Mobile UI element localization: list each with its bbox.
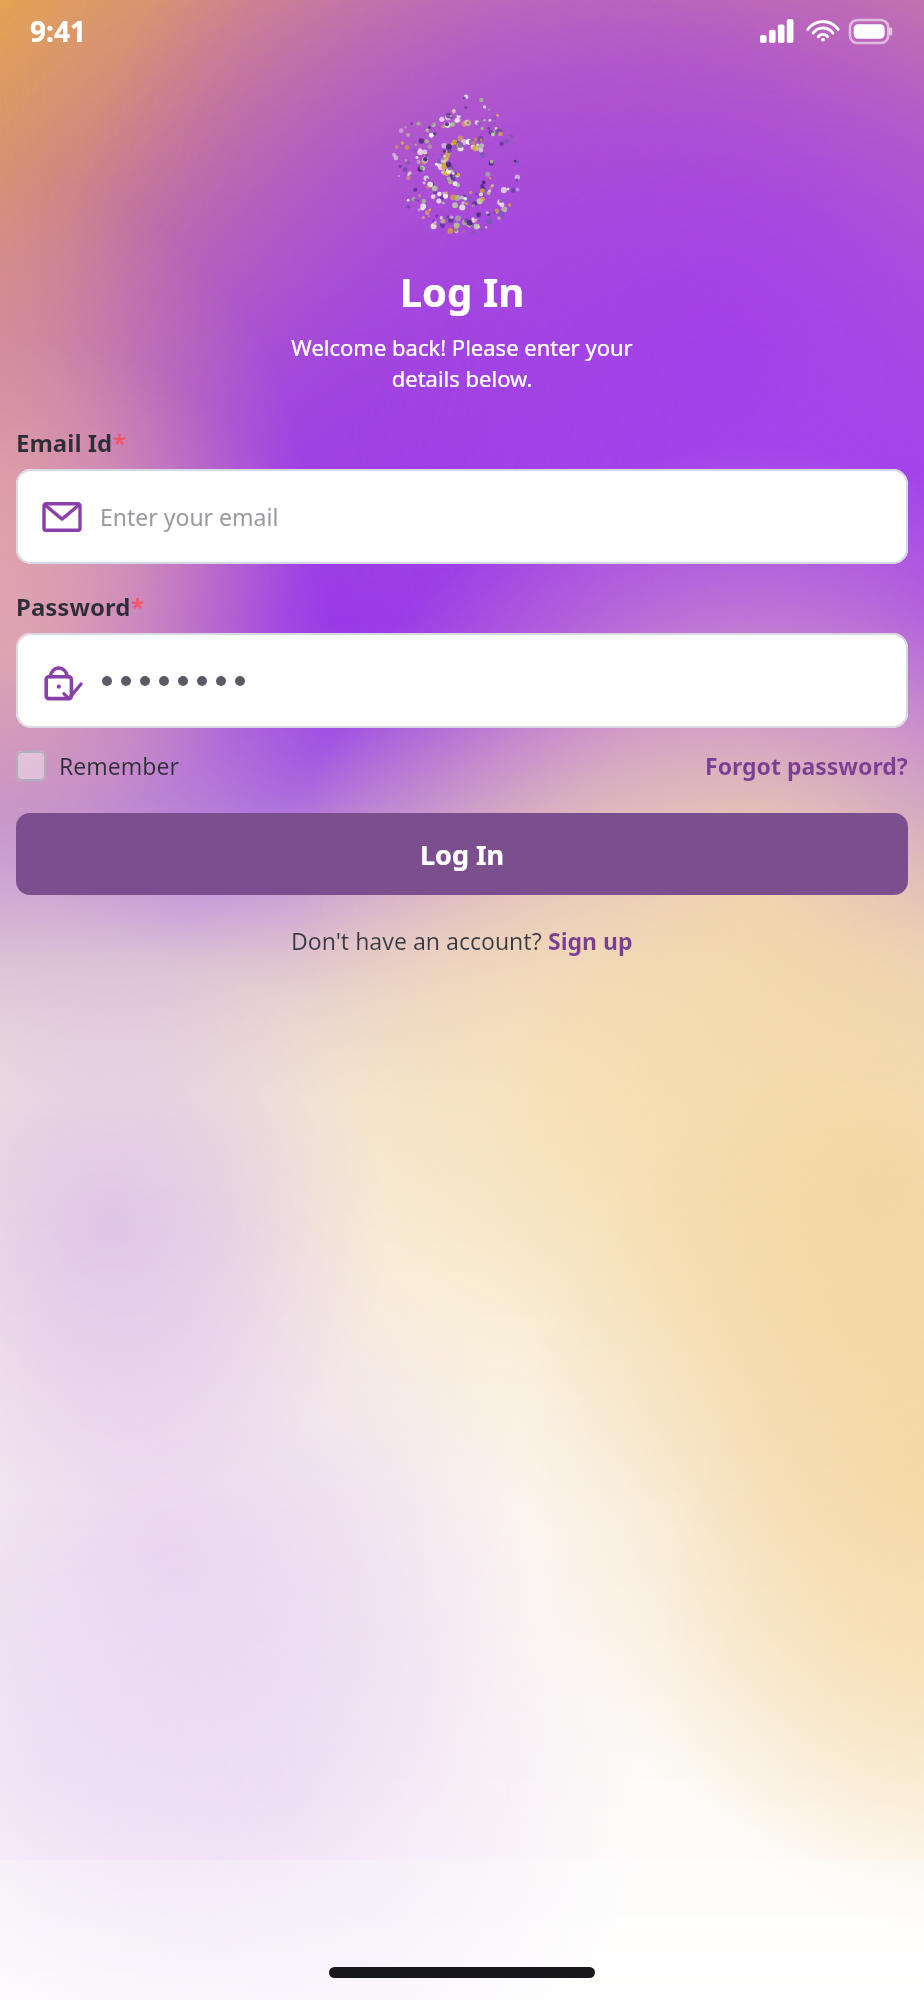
staticText: 9:41 — [30, 12, 86, 50]
button[interactable]: Log In — [16, 813, 908, 895]
staticText: * — [131, 590, 145, 623]
staticText: * — [113, 426, 127, 459]
staticText: Password — [16, 590, 131, 623]
button[interactable]: Remember — [16, 750, 179, 781]
staticText: Enter your email — [100, 501, 279, 532]
staticText: Log In — [0, 264, 924, 318]
staticText: Forgot password? — [705, 750, 908, 781]
button[interactable]: Password field — [16, 633, 908, 728]
button[interactable]: Sign up — [548, 925, 633, 956]
button[interactable]: Email field — [16, 469, 908, 564]
staticText: Email Id — [16, 426, 113, 459]
staticText: Don't have an account? — [291, 925, 548, 956]
button[interactable]: Forgot password? — [705, 750, 908, 781]
staticText: Welcome back! Please enter your details … — [36, 332, 888, 394]
other: Email — [42, 497, 82, 537]
staticText: Log In — [420, 836, 505, 873]
other: Password — [42, 660, 84, 702]
staticText: Sign up — [548, 925, 633, 956]
staticText: Remember — [59, 750, 179, 781]
